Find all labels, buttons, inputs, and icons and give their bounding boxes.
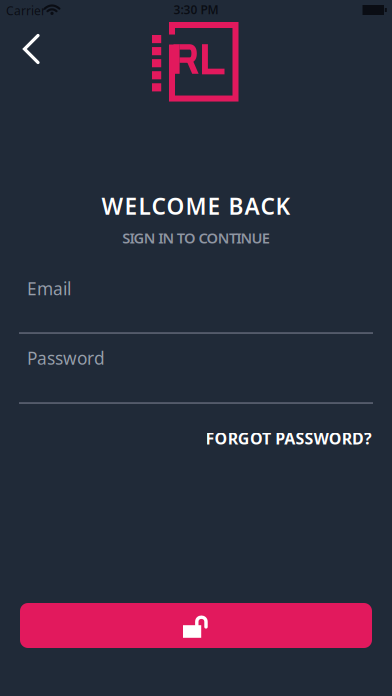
button[interactable]: FORGOT PASSWORD? (205, 428, 372, 449)
button[interactable]: Sign In (20, 603, 372, 648)
button[interactable]: Back (9, 27, 53, 71)
button[interactable]: Email (19, 271, 373, 334)
staticText: 3:30 PM (173, 2, 218, 17)
staticText: Email (27, 277, 71, 300)
staticText: Carrier (6, 3, 46, 18)
staticText: Password (27, 346, 105, 369)
staticText: FORGOT PASSWORD? (205, 428, 372, 449)
staticText: SIGN IN TO CONTINUE (122, 228, 270, 247)
button[interactable]: Password (19, 340, 373, 403)
staticText: WELCOME BACK (101, 191, 290, 221)
